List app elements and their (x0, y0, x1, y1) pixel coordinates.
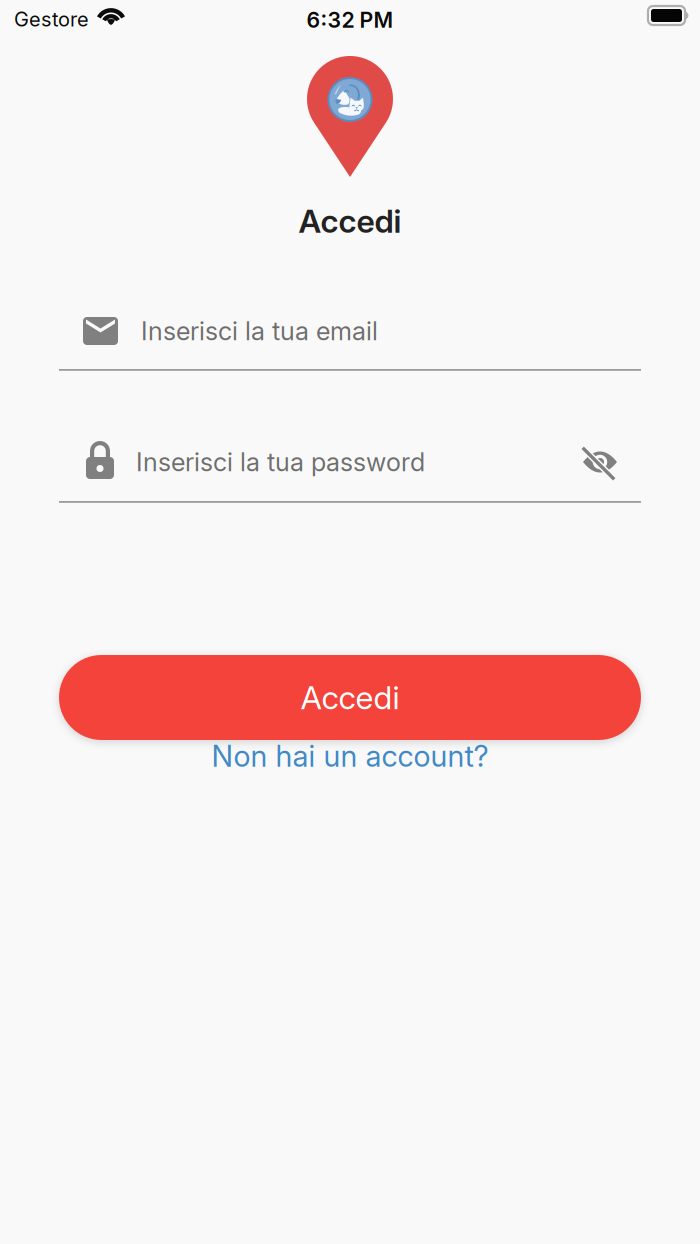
button[interactable]: Mostra password (583, 447, 641, 477)
button[interactable]: Accedi (59, 655, 641, 740)
button[interactable]: Non hai un account? (0, 740, 700, 772)
staticText: 6:32 PM (306, 7, 393, 33)
staticText: Accedi (298, 202, 401, 240)
staticText: Inserisci la tua email (141, 316, 378, 346)
staticText: Inserisci la tua password (136, 447, 425, 477)
staticText: Non hai un account? (211, 738, 488, 774)
staticText: Gestore (14, 7, 89, 31)
staticText: Accedi (300, 678, 399, 717)
